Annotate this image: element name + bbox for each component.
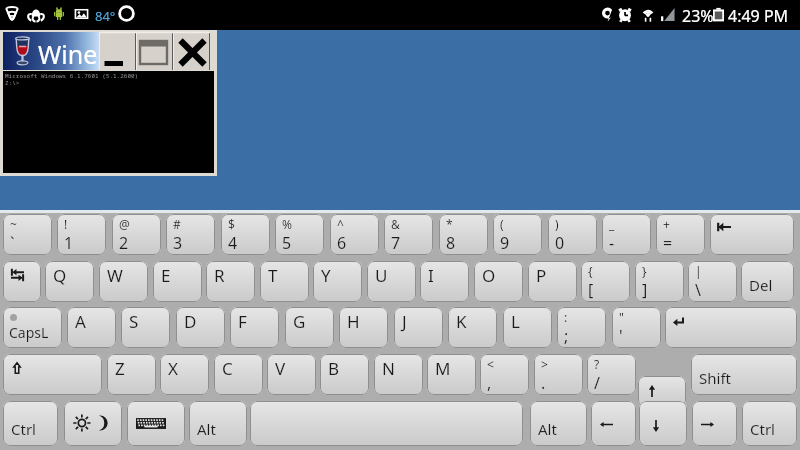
button[interactable]: ^ [330,214,379,255]
button[interactable]: G [285,307,334,348]
button[interactable]: % [275,214,324,255]
button[interactable]: S [121,307,170,348]
staticText: ' [619,325,623,347]
other: Brightness [72,414,110,432]
button[interactable]: T [260,261,309,302]
button[interactable]: M [427,354,476,395]
staticText: 84° [95,7,116,25]
button[interactable]: Brightness [64,401,122,446]
button[interactable]: Z [107,354,156,395]
staticText: ( [500,216,504,232]
staticText: O [482,264,496,287]
button[interactable]: _ [602,214,651,255]
button[interactable]: R [206,261,255,302]
button[interactable]: Left [591,401,636,446]
staticText: Ctrl [11,419,36,439]
button[interactable]: Enter [665,307,797,348]
button[interactable]: Del [741,261,794,302]
staticText: P [536,264,547,287]
button[interactable]: Backspace [710,214,794,255]
other: Left [600,422,613,427]
staticText: Q [53,264,67,287]
button[interactable]: : [557,307,606,348]
button[interactable]: Shift [3,354,102,395]
button[interactable]: Alt [530,401,587,446]
button[interactable]: Close [173,32,210,70]
button[interactable]: Minimize [99,32,136,70]
staticText: > [541,356,548,372]
button[interactable]: Right [692,401,737,446]
button[interactable]: # [166,214,215,255]
staticText: , [487,372,492,394]
button[interactable]: { [581,261,630,302]
button[interactable]: V [267,354,316,395]
button[interactable]: L [503,307,552,348]
button[interactable]: $ [221,214,270,255]
button[interactable]: U [367,261,416,302]
staticText: L [511,310,520,333]
staticText: Shift [699,368,731,388]
button[interactable]: C [214,354,263,395]
button[interactable]: & [384,214,433,255]
button[interactable]: B [320,354,369,395]
button[interactable]: Maximize [136,32,173,70]
button[interactable]: ! [57,214,106,255]
button[interactable]: J [394,307,443,348]
staticText: \ [695,279,701,301]
button[interactable]: H [339,307,388,348]
staticText: Microsoft Windows 6.1.7601 (5.1.2600) [5,72,139,80]
other: Down [653,420,659,432]
button[interactable]: Shift [691,354,797,395]
staticText: 5 [282,232,292,254]
button[interactable]: + [656,214,705,255]
staticText: 6 [337,232,347,254]
button[interactable]: A [67,307,116,348]
button[interactable]: Ctrl [3,401,58,446]
button[interactable]: @ [112,214,161,255]
button[interactable]: F [230,307,279,348]
staticText: { [588,263,593,279]
button[interactable]: E [153,261,202,302]
button[interactable]: * [439,214,488,255]
button[interactable]: Tab [3,261,41,302]
staticText: U [375,264,388,287]
button[interactable]: K [448,307,497,348]
button[interactable]: Wine [3,32,99,70]
button[interactable]: Ctrl [742,401,797,446]
staticText: # [173,216,181,232]
staticText: - [609,232,615,254]
button[interactable]: O [474,261,523,302]
other: Keyboard settings [136,415,166,432]
button[interactable]: I [420,261,469,302]
button[interactable] [250,401,523,446]
button[interactable]: ~ [3,214,52,255]
button[interactable]: | [688,261,737,302]
button[interactable]: ) [548,214,597,255]
staticText: C [222,357,233,380]
staticText: X [168,357,178,380]
button[interactable]: P [528,261,577,302]
button[interactable]: ? [587,354,636,395]
button[interactable]: Y [313,261,362,302]
button[interactable]: CapsL [3,307,62,348]
staticText: Y [321,264,331,287]
staticText: J [402,310,407,333]
button[interactable]: > [534,354,583,395]
button[interactable]: Keyboard settings [127,401,185,446]
staticText: K [456,310,467,333]
button[interactable]: W [99,261,148,302]
button[interactable]: Up [638,376,686,407]
button[interactable]: } [635,261,684,302]
button[interactable]: Down [639,401,687,446]
button[interactable]: N [374,354,423,395]
button[interactable]: Q [45,261,94,302]
button[interactable]: X [160,354,209,395]
button[interactable]: Alt [189,401,247,446]
button[interactable]: ( [493,214,542,255]
button[interactable]: < [480,354,529,395]
staticText: M [435,357,451,380]
staticText: B [328,357,340,380]
button[interactable]: D [176,307,225,348]
staticText: W [107,264,123,287]
button[interactable]: " [612,307,661,348]
